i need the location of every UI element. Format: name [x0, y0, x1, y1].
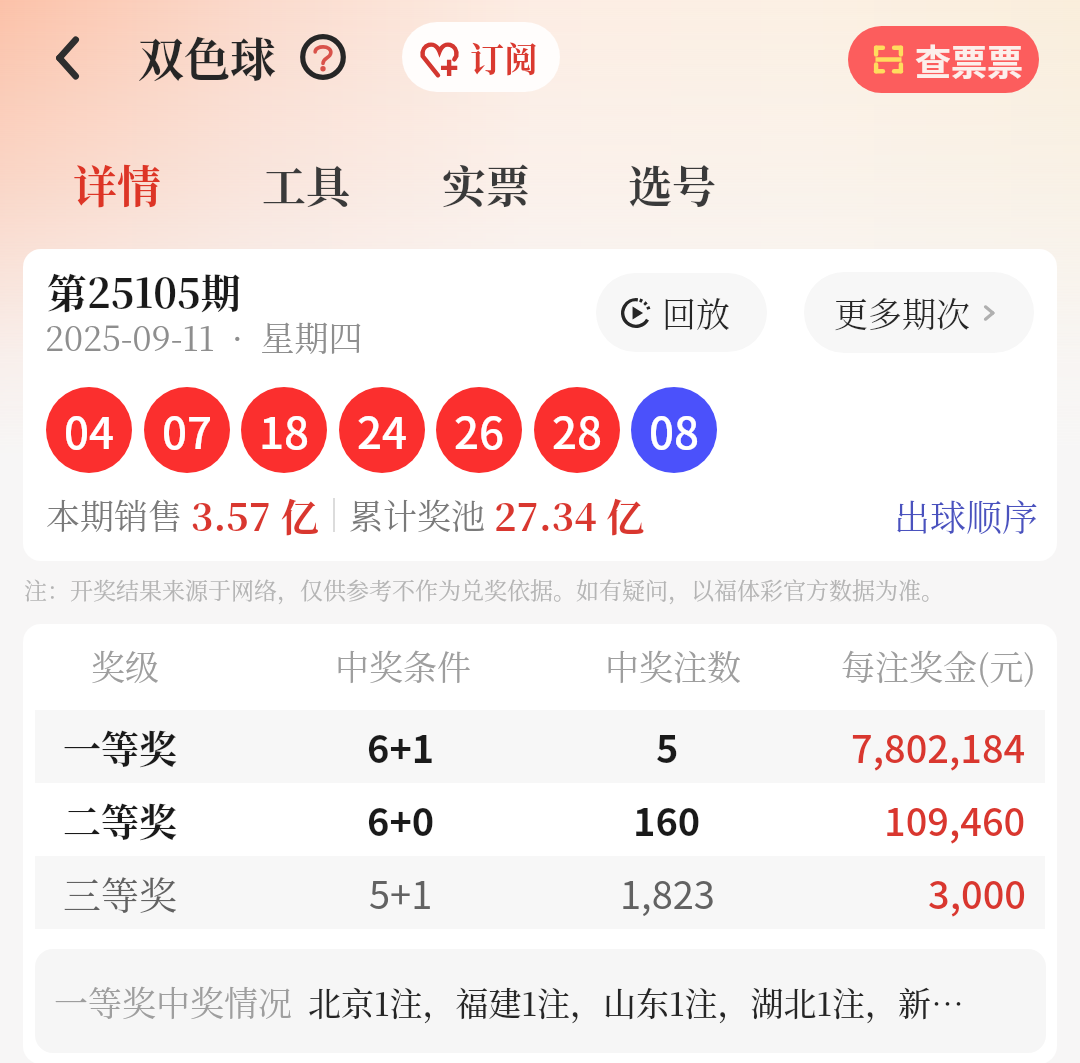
staticText: 7,802,184 [851, 719, 1026, 774]
staticText: 中奖注数 [605, 641, 741, 690]
staticText: 选号 [628, 152, 716, 215]
staticText: 6+1 [367, 719, 435, 774]
staticText: 更多期次 [834, 288, 970, 337]
staticText: 一等奖中奖情况 [54, 977, 292, 1026]
staticText: 04 [64, 398, 115, 462]
staticText: 24 [357, 398, 408, 462]
staticText: 二等奖 [63, 792, 178, 847]
button[interactable]: Help [293, 27, 353, 87]
button[interactable]: 更多期次 [804, 272, 1034, 353]
staticText: 28 [552, 398, 603, 462]
staticText: 工具 [262, 152, 350, 215]
staticText: 实票 [442, 152, 530, 215]
button[interactable]: 三等奖 [35, 856, 1045, 929]
staticText: 26 [454, 398, 505, 462]
button[interactable]: 24 [339, 387, 425, 473]
button[interactable]: 18 [241, 387, 327, 473]
staticText: 每注奖金(元) [841, 641, 1036, 690]
button[interactable]: 选号 [611, 143, 733, 223]
staticText: 5+1 [369, 865, 433, 920]
button[interactable]: 订阅 [402, 22, 560, 92]
staticText: 18 [259, 398, 310, 462]
staticText: 出球顺序 [894, 490, 1039, 542]
staticText: 中奖条件 [335, 641, 471, 690]
staticText: 6+0 [367, 792, 435, 847]
staticText: 第25105期 [47, 262, 241, 319]
staticText: 查票票 [915, 34, 1024, 86]
staticText: 本期销售 [46, 490, 191, 539]
button[interactable]: 28 [534, 387, 620, 473]
staticText: 三等奖 [63, 865, 178, 920]
button[interactable]: 一等奖中奖情况 [35, 949, 1046, 1053]
staticText: 奖级 [91, 641, 159, 690]
button[interactable]: 回放 [596, 273, 767, 352]
staticText: 注：开奖结果来源于网络，仅供参考不作为兑奖依据。如有疑问，以福体彩官方数据为准。 [24, 573, 944, 606]
staticText: 回放 [662, 288, 730, 337]
button[interactable]: 出球顺序 [888, 486, 1045, 546]
staticText: 07 [162, 398, 213, 462]
button[interactable]: 07 [144, 387, 230, 473]
button[interactable]: 04 [46, 387, 132, 473]
button[interactable]: 26 [436, 387, 522, 473]
staticText: 北京1注，福建1注，山东1注，湖北1注，新… [308, 978, 964, 1025]
button[interactable]: 二等奖 [35, 783, 1045, 856]
staticText: 详情 [73, 152, 161, 215]
button[interactable]: 一等奖 [35, 710, 1045, 783]
staticText: 3.57 亿 [191, 487, 319, 542]
staticText: 3,000 [928, 865, 1026, 920]
staticText: 累计奖池 [349, 490, 494, 539]
staticText: 1,823 [620, 865, 715, 920]
staticText: 双色球 [138, 23, 276, 89]
staticText: 27.34 亿 [494, 487, 645, 542]
staticText: 一等奖 [63, 719, 178, 774]
button[interactable]: 实票 [425, 143, 547, 223]
button[interactable]: 查票票 [848, 26, 1039, 93]
button[interactable]: 08 [631, 387, 717, 473]
staticText: 2025-09-11 · 星期四 [45, 312, 363, 361]
staticText: 5 [656, 719, 679, 774]
staticText: 109,460 [884, 792, 1026, 847]
staticText: 订阅 [470, 33, 538, 82]
staticText: 08 [649, 398, 700, 462]
button[interactable]: Back [37, 26, 101, 90]
button[interactable]: 工具 [245, 143, 367, 223]
staticText: 160 [633, 792, 701, 847]
button[interactable]: 详情 [56, 143, 178, 223]
